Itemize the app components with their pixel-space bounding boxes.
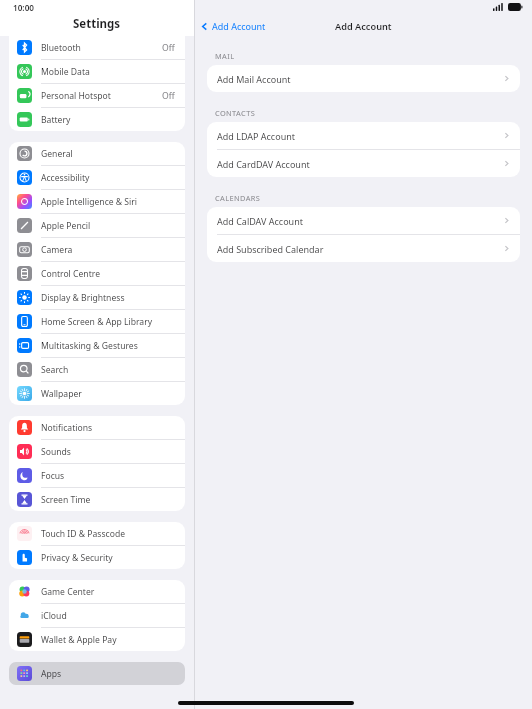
button[interactable]: Mobile Data xyxy=(9,60,185,83)
staticText: Touch ID & Passcode xyxy=(41,528,126,540)
button[interactable]: Sounds xyxy=(9,440,185,463)
button[interactable]: Camera xyxy=(9,238,185,261)
button[interactable]: Display & Brightness xyxy=(9,286,185,309)
staticText: Accessibility xyxy=(41,172,90,184)
staticText: 10:00 xyxy=(13,2,34,13)
button[interactable]: Apple Intelligence & Siri xyxy=(9,190,185,213)
button[interactable]: Personal Hotspot xyxy=(9,84,185,107)
staticText: Sounds xyxy=(41,446,71,458)
button[interactable]: Wallet & Apple Pay xyxy=(9,628,185,651)
staticText: Battery xyxy=(41,114,71,126)
button[interactable]: Game Center xyxy=(9,580,185,603)
button[interactable]: Multitasking & Gestures xyxy=(9,334,185,357)
button[interactable]: Add Subscribed Calendar xyxy=(207,235,520,262)
other: Signal xyxy=(493,3,504,11)
button[interactable]: Touch ID & Passcode xyxy=(9,522,185,545)
staticText: Search xyxy=(41,364,69,376)
staticText: Add Account xyxy=(212,20,266,32)
staticText: Add LDAP Account xyxy=(217,130,296,142)
button[interactable]: Apple Pencil xyxy=(9,214,185,237)
other: Battery xyxy=(508,3,523,11)
button[interactable]: Search xyxy=(9,358,185,381)
staticText: Wallpaper xyxy=(41,388,82,400)
staticText: Add Mail Account xyxy=(217,73,291,85)
staticText: Focus xyxy=(41,470,65,482)
button[interactable]: Focus xyxy=(9,464,185,487)
staticText: Off xyxy=(162,42,175,54)
staticText: Settings xyxy=(73,16,121,32)
staticText: MAIL xyxy=(215,51,235,61)
staticText: Wallet & Apple Pay xyxy=(41,634,117,646)
staticText: Game Center xyxy=(41,586,95,598)
button[interactable]: iCloud xyxy=(9,604,185,627)
button[interactable]: Accessibility xyxy=(9,166,185,189)
button[interactable]: Add Mail Account xyxy=(207,65,520,92)
staticText: Control Centre xyxy=(41,268,100,280)
button[interactable]: Bluetooth xyxy=(9,36,185,59)
staticText: Apple Intelligence & Siri xyxy=(41,196,138,208)
button[interactable]: Home Screen & App Library xyxy=(9,310,185,333)
staticText: Display & Brightness xyxy=(41,292,125,304)
staticText: Multitasking & Gestures xyxy=(41,340,138,352)
staticText: Home Screen & App Library xyxy=(41,316,153,328)
button[interactable]: Add CalDAV Account xyxy=(207,207,520,234)
staticText: iCloud xyxy=(41,610,67,622)
staticText: Mobile Data xyxy=(41,66,90,78)
staticText: Apple Pencil xyxy=(41,220,91,232)
staticText: Personal Hotspot xyxy=(41,90,111,102)
button[interactable]: Screen Time xyxy=(9,488,185,511)
button[interactable]: Add CardDAV Account xyxy=(207,150,520,177)
button[interactable]: Privacy & Security xyxy=(9,546,185,569)
staticText: Screen Time xyxy=(41,494,91,506)
button[interactable]: General xyxy=(9,142,185,165)
button[interactable]: Notifications xyxy=(9,416,185,439)
staticText: Add CalDAV Account xyxy=(217,215,303,227)
staticText: Privacy & Security xyxy=(41,552,113,564)
staticText: General xyxy=(41,148,73,160)
button[interactable]: Control Centre xyxy=(9,262,185,285)
staticText: Add CardDAV Account xyxy=(217,158,310,170)
staticText: Bluetooth xyxy=(41,42,81,54)
button[interactable]: Apps xyxy=(9,662,185,685)
staticText: Add Account xyxy=(335,20,392,33)
staticText: Off xyxy=(162,90,175,102)
staticText: CONTACTS xyxy=(215,108,256,118)
button[interactable]: Add Account xyxy=(200,20,266,32)
staticText: CALENDARS xyxy=(215,193,261,203)
staticText: Camera xyxy=(41,244,73,256)
button[interactable]: Add LDAP Account xyxy=(207,122,520,149)
button[interactable]: Wallpaper xyxy=(9,382,185,405)
staticText: Apps xyxy=(41,668,62,680)
staticText: Notifications xyxy=(41,422,93,434)
button[interactable]: Battery xyxy=(9,108,185,131)
staticText: Add Subscribed Calendar xyxy=(217,243,324,255)
